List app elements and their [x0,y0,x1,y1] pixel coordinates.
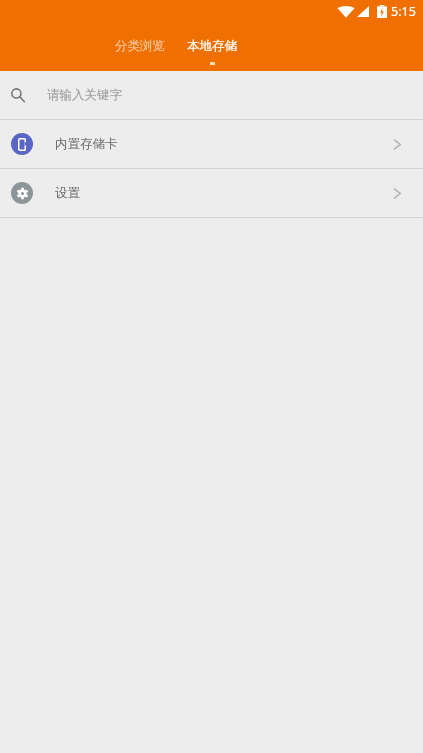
other: Open 设置 [382,178,412,208]
button[interactable]: 分类浏览 [109,37,171,66]
staticText: 分类浏览 [115,38,165,54]
button[interactable]: 内置存储卡 [0,120,423,168]
button[interactable]: 本地存储 [181,37,243,66]
staticText: 内置存储卡 [55,136,118,152]
staticText: 请输入关键字 [47,87,122,103]
other: Open 内置存储卡 [382,129,412,159]
staticText: 本地存储 [187,38,237,54]
other: Search [9,86,27,104]
button[interactable]: Search [0,71,423,119]
button[interactable]: 设置 [0,169,423,217]
staticText: 设置 [55,185,80,201]
staticText: 5:15 [391,3,416,20]
